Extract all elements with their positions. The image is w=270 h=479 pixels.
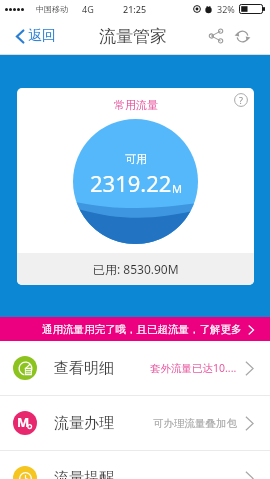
- button[interactable]: Help: [233, 92, 249, 108]
- staticText: 查看明细: [54, 359, 114, 378]
- staticText: 流量管家: [99, 26, 167, 47]
- staticText: 流量提醒: [54, 469, 114, 479]
- button[interactable]: 查看明细: [0, 341, 270, 395]
- staticText: M: [172, 181, 182, 196]
- button[interactable]: Share: [203, 23, 229, 49]
- staticText: ?: [239, 94, 243, 106]
- button[interactable]: M: [0, 396, 270, 450]
- staticText: 常用流量: [114, 98, 158, 112]
- button[interactable]: 流量提醒: [0, 451, 270, 479]
- button[interactable]: Refresh: [229, 23, 255, 49]
- staticText: 返回: [28, 27, 56, 45]
- staticText: 套外流量已达10....: [150, 361, 237, 375]
- staticText: 2319.22: [90, 168, 172, 198]
- staticText: 已用: 8530.90M: [93, 261, 179, 277]
- staticText: 4G: [82, 3, 94, 15]
- staticText: 可用: [125, 152, 147, 166]
- button[interactable]: 返回: [0, 22, 64, 50]
- staticText: 可办理流量叠加包: [153, 417, 237, 430]
- staticText: 32%: [217, 3, 235, 15]
- button[interactable]: 通用流量用完了哦，且已超流量，了解更多: [0, 317, 270, 341]
- staticText: 通用流量用完了哦，且已超流量，了解更多: [42, 323, 242, 336]
- staticText: 21:25: [123, 3, 147, 15]
- staticText: M: [17, 413, 30, 431]
- staticText: 流量办理: [54, 414, 114, 433]
- staticText: 中国移动: [36, 4, 68, 14]
